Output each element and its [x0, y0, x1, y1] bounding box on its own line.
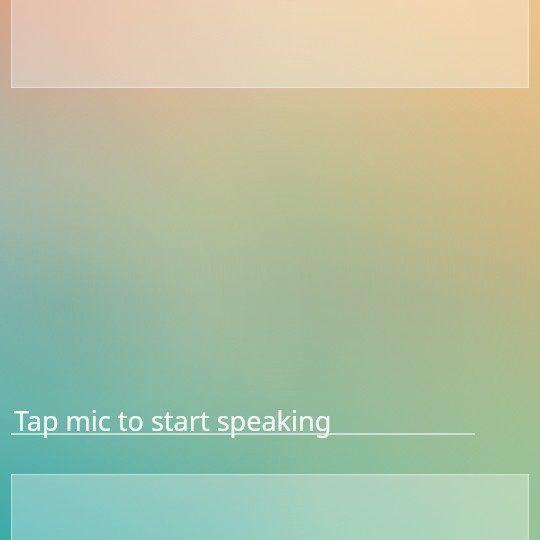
button[interactable]: Tap mic to start speaking: [0, 0, 540, 540]
